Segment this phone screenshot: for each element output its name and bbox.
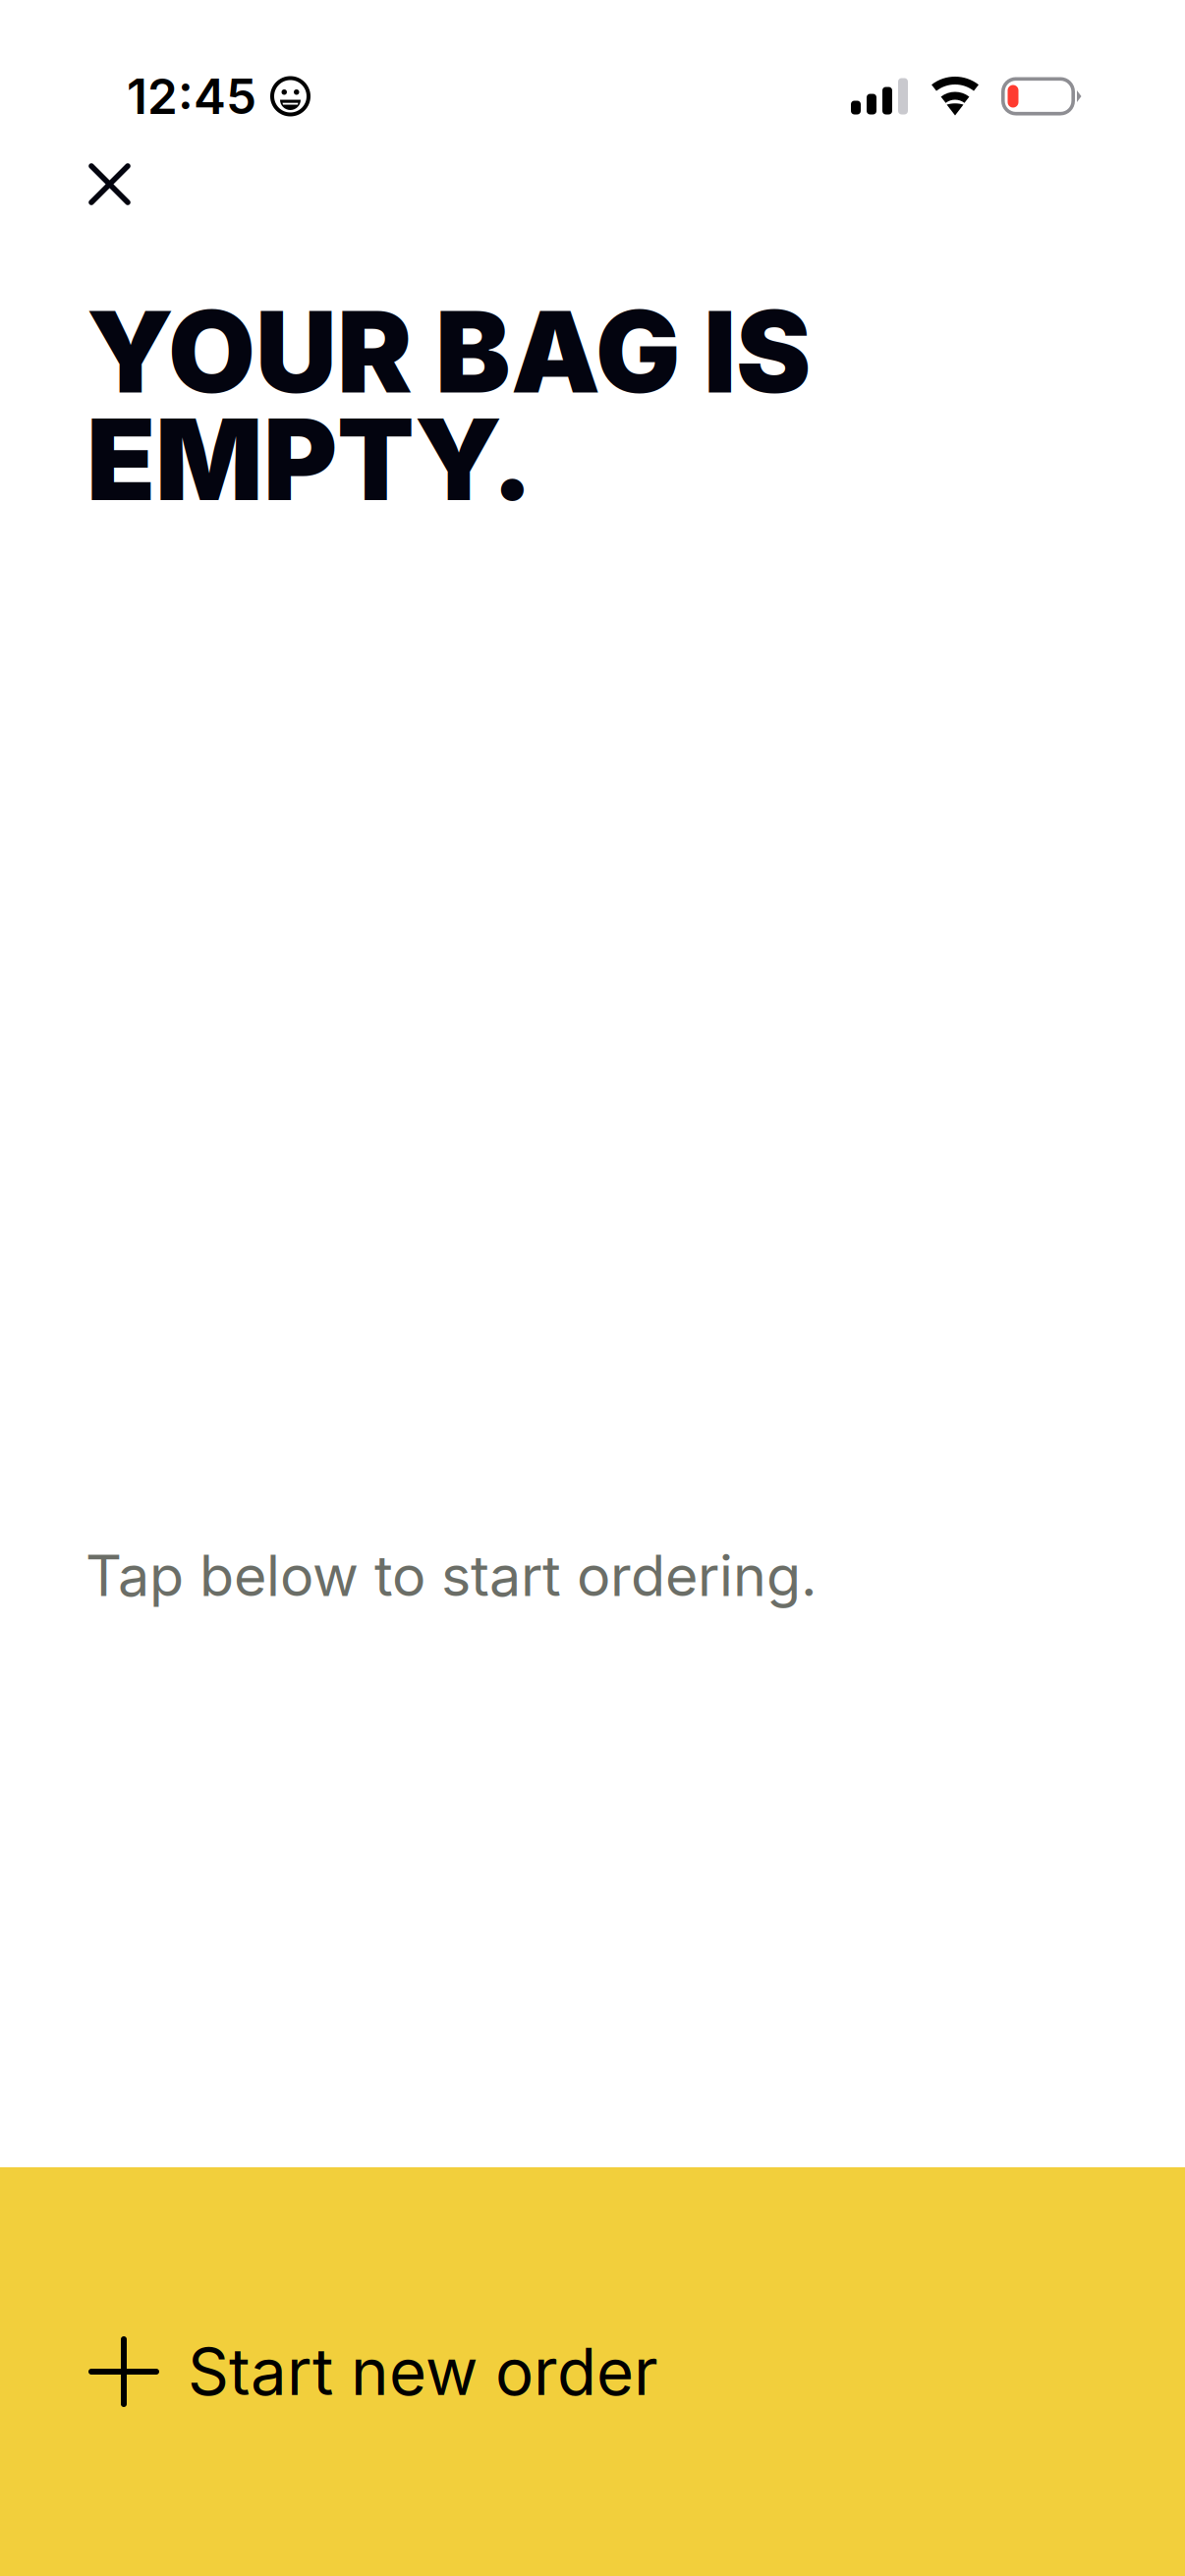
button[interactable]: Start new order <box>0 2167 1185 2576</box>
staticText: YOUR BAG IS EMPTY. <box>86 298 811 513</box>
button[interactable]: Close <box>58 136 161 233</box>
staticText: Tap below to start ordering. <box>85 1541 818 1610</box>
staticText: 12:45 <box>127 67 256 126</box>
staticText: Start new order <box>188 2333 658 2410</box>
